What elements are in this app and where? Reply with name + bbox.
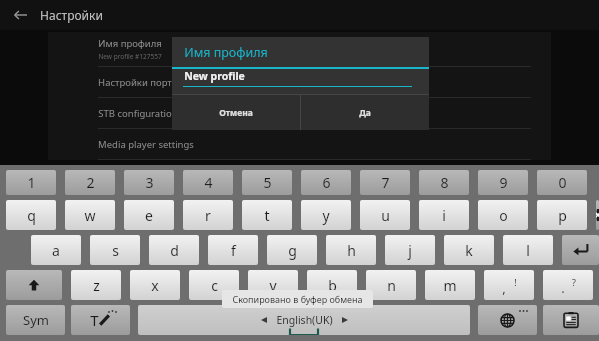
button[interactable]: Backspace bbox=[596, 200, 599, 230]
button[interactable]: Input method bbox=[71, 305, 130, 335]
button[interactable]: 6 bbox=[301, 170, 351, 195]
button[interactable]: 1 bbox=[6, 170, 56, 195]
staticText: Sym bbox=[23, 311, 49, 329]
button[interactable]: j bbox=[385, 235, 435, 265]
button[interactable]: p bbox=[537, 200, 587, 230]
staticText: s bbox=[112, 241, 119, 260]
button[interactable]: o bbox=[478, 200, 528, 230]
staticText: New profile #127557 bbox=[98, 52, 162, 61]
staticText: Да bbox=[359, 107, 371, 119]
button[interactable]: Отмена bbox=[172, 95, 300, 130]
staticText: a bbox=[52, 241, 60, 260]
staticText: q bbox=[27, 206, 36, 225]
button[interactable]: s bbox=[90, 235, 140, 265]
staticText: l bbox=[526, 241, 530, 260]
button[interactable]: u bbox=[360, 200, 410, 230]
button[interactable]: 7 bbox=[360, 170, 410, 195]
staticText: , bbox=[502, 279, 506, 297]
staticText: 3 bbox=[145, 173, 154, 192]
button[interactable]: Shift bbox=[6, 270, 62, 300]
staticText: 5 bbox=[263, 173, 272, 192]
staticText: w bbox=[84, 206, 96, 225]
staticText: 7 bbox=[381, 173, 390, 192]
button[interactable]: 8 bbox=[419, 170, 469, 195]
staticText: Media player settings bbox=[98, 138, 194, 151]
staticText: Скопировано в буфер обмена bbox=[232, 293, 363, 305]
button[interactable]: n bbox=[366, 270, 416, 300]
button[interactable]: Enter bbox=[562, 235, 599, 265]
staticText: New profile bbox=[184, 69, 245, 83]
staticText: 9 bbox=[499, 173, 508, 192]
staticText: t bbox=[264, 206, 270, 225]
button[interactable]: 4 bbox=[183, 170, 233, 195]
staticText: j bbox=[408, 241, 412, 260]
button[interactable]: x bbox=[130, 270, 180, 300]
staticText: o bbox=[499, 206, 508, 225]
button[interactable]: 3 bbox=[124, 170, 174, 195]
button[interactable]: y bbox=[301, 200, 351, 230]
button[interactable]: t bbox=[242, 200, 292, 230]
button[interactable]: w bbox=[65, 200, 115, 230]
staticText: m bbox=[443, 276, 457, 295]
button[interactable]: m bbox=[425, 270, 475, 300]
staticText: 0 bbox=[558, 173, 567, 192]
button[interactable]: 5 bbox=[242, 170, 292, 195]
button[interactable]: Clipboard bbox=[543, 305, 599, 335]
staticText: k bbox=[465, 241, 473, 260]
staticText: x bbox=[151, 276, 159, 295]
button[interactable]: h bbox=[326, 235, 376, 265]
staticText: T bbox=[90, 310, 99, 330]
staticText: Отмена bbox=[219, 107, 253, 119]
button[interactable]: f bbox=[208, 235, 258, 265]
button[interactable]: g bbox=[267, 235, 317, 265]
staticText: d bbox=[170, 241, 179, 260]
button[interactable]: 0 bbox=[537, 170, 587, 195]
staticText: English(UK) bbox=[276, 313, 333, 327]
button[interactable]: e bbox=[124, 200, 174, 230]
button[interactable]: Sym bbox=[6, 305, 65, 335]
button[interactable]: Back bbox=[0, 0, 40, 30]
button[interactable]: , bbox=[484, 270, 534, 300]
staticText: c bbox=[211, 276, 218, 295]
staticText: p bbox=[558, 206, 567, 225]
staticText: n bbox=[387, 276, 396, 295]
button[interactable]: d bbox=[149, 235, 199, 265]
staticText: 6 bbox=[322, 173, 331, 192]
button[interactable]: a bbox=[31, 235, 81, 265]
staticText: Настройки портала bbox=[98, 76, 188, 89]
button[interactable]: b bbox=[307, 270, 357, 300]
staticText: b bbox=[328, 276, 337, 295]
staticText: 8 bbox=[440, 173, 449, 192]
staticText: r bbox=[205, 206, 211, 225]
button[interactable]: c bbox=[189, 270, 239, 300]
button[interactable]: . bbox=[543, 270, 593, 300]
button[interactable]: l bbox=[503, 235, 553, 265]
button[interactable]: v bbox=[248, 270, 298, 300]
staticText: 4 bbox=[204, 173, 213, 192]
button[interactable]: q bbox=[6, 200, 56, 230]
staticText: . bbox=[561, 279, 565, 297]
button[interactable]: i bbox=[419, 200, 469, 230]
staticText: g bbox=[288, 241, 297, 260]
button[interactable]: k bbox=[444, 235, 494, 265]
staticText: 2 bbox=[86, 173, 95, 192]
staticText: 1 bbox=[27, 173, 36, 192]
staticText: f bbox=[231, 241, 236, 260]
staticText: y bbox=[322, 206, 330, 225]
button[interactable]: 2 bbox=[65, 170, 115, 195]
staticText: STB configuration bbox=[98, 107, 178, 120]
staticText: e bbox=[145, 206, 153, 225]
staticText: Настройки bbox=[40, 7, 103, 23]
button[interactable]: 9 bbox=[478, 170, 528, 195]
staticText: z bbox=[93, 276, 100, 295]
button[interactable]: z bbox=[71, 270, 121, 300]
button[interactable]: r bbox=[183, 200, 233, 230]
button[interactable]: English(UK) bbox=[138, 305, 470, 335]
staticText: v bbox=[269, 276, 277, 295]
button[interactable]: Да bbox=[301, 95, 429, 130]
button[interactable]: Language bbox=[478, 305, 537, 335]
staticText: ! bbox=[514, 276, 517, 288]
staticText: h bbox=[347, 241, 356, 260]
staticText: u bbox=[381, 206, 390, 225]
staticText: Имя профиля bbox=[184, 44, 268, 61]
